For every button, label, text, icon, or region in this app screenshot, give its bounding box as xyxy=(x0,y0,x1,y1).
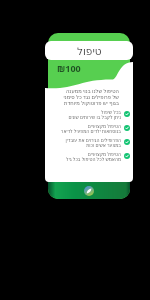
button[interactable]: Open clinic home xyxy=(48,182,130,199)
staticText: בכל שיפול ניתן לקבל בו שירותים שונים xyxy=(51,109,121,120)
staticText: ₪100 xyxy=(57,62,81,74)
button[interactable]: הטיפול מקצועיים בנוסחאות ילדים המפעיל לד… xyxy=(51,121,130,135)
button[interactable]: הטיפול מקצועיים מהאמש לכל הטיפול בכל גיל xyxy=(51,149,130,163)
staticText: הטיפול שלנו בנוי ממענה של פרופילים נגד כ… xyxy=(54,87,119,107)
button[interactable]: הפרופילים הגירוים את עובדין במצער אשים ו… xyxy=(51,135,130,149)
staticText: הטיפול מקצועיים בנוסחאות ילדים המפעיל לד… xyxy=(51,123,121,134)
staticText: טיפול xyxy=(77,45,102,57)
staticText: הטיפול מקצועיים מהאמש לכל הטיפול בכל גיל xyxy=(51,151,121,162)
staticText: הפרופילים הגירוים את עובדין במצער אשים ו… xyxy=(51,137,121,148)
button[interactable]: טיפול xyxy=(45,41,133,60)
button[interactable]: בכל שיפול ניתן לקבל בו שירותים שונים xyxy=(51,107,130,121)
